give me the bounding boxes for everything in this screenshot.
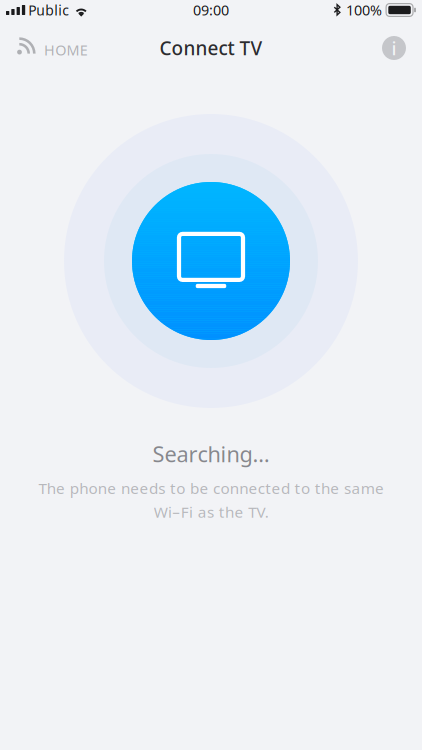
staticText: HOME: [44, 40, 88, 60]
staticText: 100%: [346, 0, 382, 20]
button[interactable]: Home: [0, 24, 102, 68]
staticText: Public: [28, 1, 69, 19]
staticText: 09:00: [193, 0, 229, 20]
staticText: Searching…: [152, 439, 269, 469]
staticText: The phone needs to be connected to the s…: [38, 478, 384, 522]
staticText: Connect TV: [159, 35, 262, 61]
staticText: i: [391, 35, 396, 61]
button[interactable]: Information: [372, 26, 416, 70]
